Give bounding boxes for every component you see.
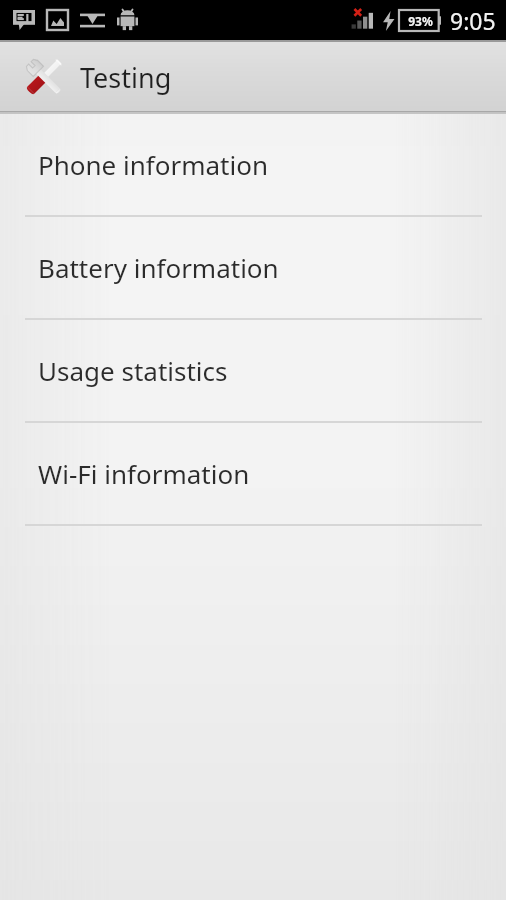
button[interactable]: Wi-Fi information — [0, 423, 506, 526]
staticText: 9:05 — [450, 5, 496, 36]
staticText: Testing — [80, 59, 172, 96]
button[interactable]: Usage statistics — [0, 320, 506, 423]
button[interactable]: Phone information — [0, 114, 506, 217]
staticText: Battery information — [38, 250, 279, 285]
staticText: Wi-Fi information — [38, 456, 250, 491]
button[interactable]: Battery information — [0, 217, 506, 320]
staticText: 93% — [408, 13, 433, 29]
staticText: Phone information — [38, 147, 268, 182]
staticText: Usage statistics — [38, 353, 228, 388]
